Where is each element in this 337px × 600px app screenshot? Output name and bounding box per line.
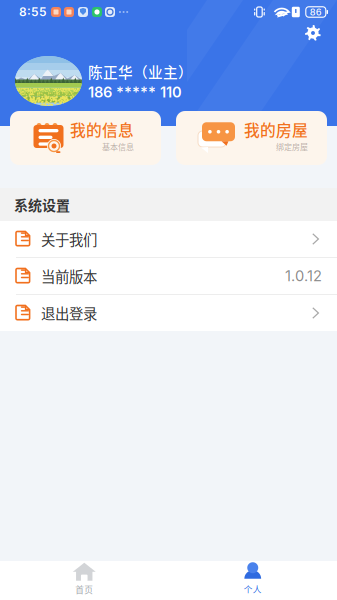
button[interactable]: 个人 (168, 561, 337, 600)
button[interactable]: 首页 (0, 561, 168, 600)
staticText: 绑定房屋 (276, 141, 308, 152)
staticText: 退出登录 (41, 303, 97, 323)
button[interactable]: 我的房屋 (176, 111, 327, 165)
staticText: 我的信息 (70, 118, 134, 141)
button[interactable]: 我的信息 (10, 111, 161, 165)
staticText: 首页 (75, 583, 93, 596)
staticText: 86 (310, 6, 322, 18)
button[interactable]: 当前版本 (0, 258, 337, 294)
button[interactable]: Settings (297, 24, 329, 42)
staticText: 1.0.12 (285, 267, 322, 285)
staticText: 基本信息 (102, 141, 134, 152)
staticText: 系统设置 (14, 194, 70, 215)
button[interactable]: 关于我们 (0, 221, 337, 257)
staticText: 8:55 (19, 5, 47, 19)
staticText: 关于我们 (41, 229, 97, 249)
staticText: 陈正华（业主） (88, 61, 193, 82)
staticText: 当前版本 (41, 266, 97, 286)
button[interactable]: 退出登录 (0, 295, 337, 331)
staticText: 个人 (244, 583, 262, 596)
staticText: 我的房屋 (244, 118, 308, 141)
staticText: 186 ***** 110 (88, 83, 182, 101)
